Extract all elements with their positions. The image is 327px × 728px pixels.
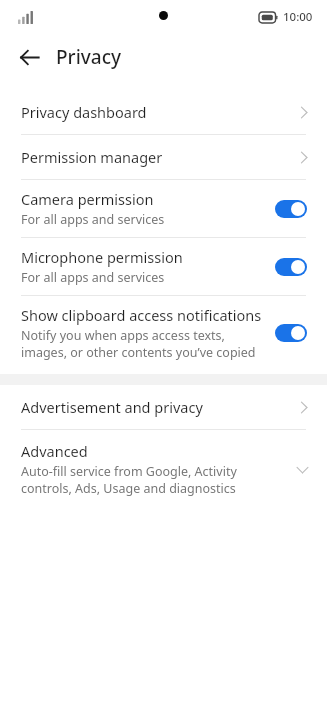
staticText: Advanced — [21, 441, 88, 461]
button[interactable]: Toggle — [275, 324, 307, 342]
staticText: Auto-fill service from Google, Activity … — [21, 463, 284, 497]
staticText: For all apps and services — [21, 269, 165, 286]
staticText: Privacy dashboard — [21, 102, 296, 122]
staticText: Permission manager — [21, 147, 296, 167]
button[interactable]: Advanced — [0, 430, 327, 508]
button[interactable]: Permission manager — [0, 135, 327, 179]
button[interactable]: Back — [10, 38, 48, 76]
staticText: Privacy — [56, 44, 121, 70]
button[interactable]: Toggle — [275, 258, 307, 276]
button[interactable]: Camera permission — [0, 180, 327, 237]
staticText: Notify you when apps access texts, image… — [21, 327, 263, 361]
button[interactable]: Privacy dashboard — [0, 90, 327, 134]
button[interactable]: Toggle — [275, 200, 307, 218]
staticText: For all apps and services — [21, 211, 165, 228]
button[interactable]: Show clipboard access notifications — [0, 296, 327, 370]
staticText: Camera permission — [21, 189, 154, 209]
staticText: 10:00 — [283, 9, 313, 25]
staticText: Advertisement and privacy — [21, 397, 296, 417]
staticText: Microphone permission — [21, 247, 183, 267]
staticText: Show clipboard access notifications — [21, 305, 262, 325]
button[interactable]: Microphone permission — [0, 238, 327, 295]
button[interactable]: Advertisement and privacy — [0, 385, 327, 429]
